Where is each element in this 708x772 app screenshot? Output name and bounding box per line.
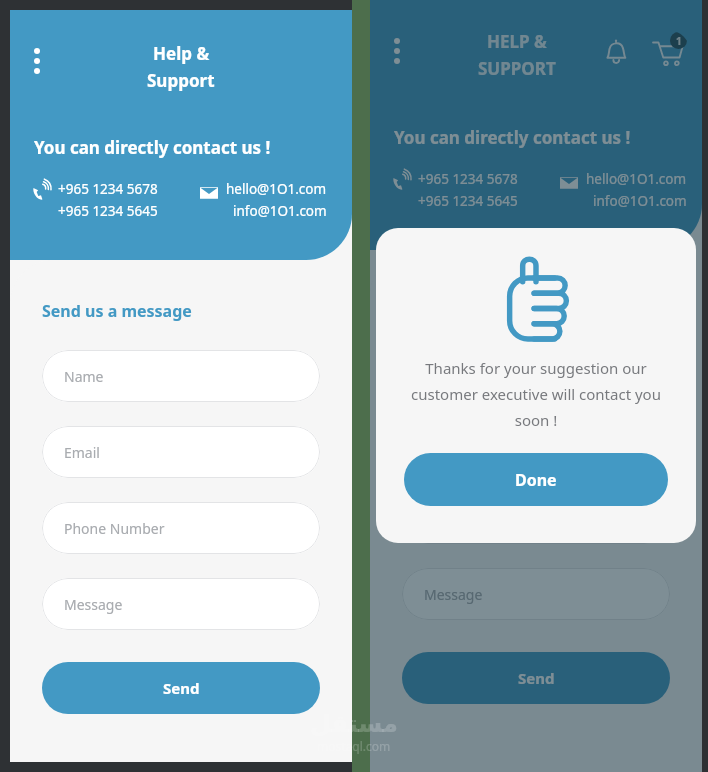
staticText: info@1O1.com (593, 192, 687, 210)
staticText: 1 (676, 34, 682, 48)
staticText: You can directly contact us ! (34, 136, 271, 159)
staticText: +965 1234 5678 (58, 180, 158, 198)
staticText: HELP & (487, 30, 547, 53)
button[interactable]: Send (42, 662, 320, 714)
button[interactable]: Send (402, 652, 670, 704)
button[interactable]: Email (42, 426, 320, 478)
staticText: +965 1234 5645 (418, 192, 518, 210)
button[interactable]: Cart (646, 30, 690, 74)
staticText: Send us a message (42, 300, 192, 322)
button[interactable]: More options (378, 32, 416, 70)
staticText: You can directly contact us ! (394, 126, 631, 149)
staticText: Name (64, 367, 104, 386)
staticText: hello@1O1.com (226, 180, 327, 198)
button[interactable]: Message (42, 578, 320, 630)
staticText: Message (64, 595, 123, 614)
button[interactable]: Phone Number (402, 492, 670, 544)
button[interactable]: More options (18, 42, 56, 80)
staticText: Help & (153, 42, 210, 65)
button[interactable]: Phone Number (42, 502, 320, 554)
button[interactable]: Message (402, 568, 670, 620)
staticText: hello@1O1.com (586, 170, 687, 188)
staticText: Phone Number (64, 519, 165, 538)
staticText: Message (424, 585, 483, 604)
button[interactable]: Email (402, 416, 670, 468)
button[interactable]: Name (402, 340, 670, 392)
staticText: Send us a message (402, 290, 552, 312)
staticText: Send (518, 668, 555, 688)
staticText: mostaql.com (317, 738, 391, 754)
staticText: Email (64, 443, 100, 462)
staticText: مستقل (310, 710, 398, 738)
button[interactable]: Done (404, 453, 668, 506)
button[interactable]: Notifications (596, 32, 636, 72)
staticText: Name (424, 357, 464, 376)
staticText: +965 1234 5645 (58, 202, 158, 220)
staticText: Thanks for your suggestion our customer … (404, 358, 668, 431)
staticText: SUPPORT (478, 57, 556, 80)
staticText: +965 1234 5678 (418, 170, 518, 188)
staticText: Support (147, 69, 215, 92)
staticText: Send (163, 678, 200, 698)
staticText: Done (515, 469, 557, 491)
staticText: info@1O1.com (233, 202, 327, 220)
button[interactable]: Name (42, 350, 320, 402)
